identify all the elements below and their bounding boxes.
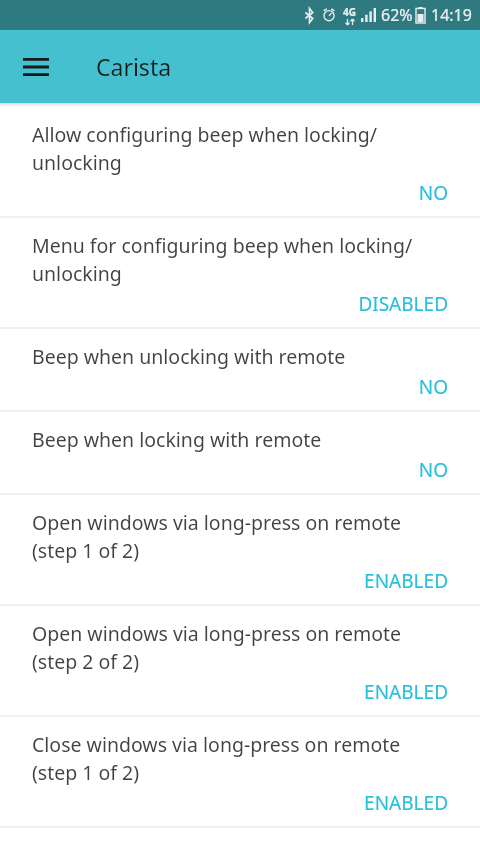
button[interactable]: Open navigation menu [12, 43, 60, 91]
staticText: ENABLED [32, 679, 448, 705]
staticText: Menu for configuring beep when locking/ … [32, 232, 413, 287]
button[interactable]: Beep when locking with remote [0, 412, 480, 493]
button[interactable]: Open windows via long-press on remote (s… [0, 495, 480, 604]
staticText: Beep when unlocking with remote [32, 343, 346, 370]
button[interactable]: Open windows via long-press on remote (s… [0, 606, 480, 715]
staticText: 4G [343, 5, 356, 19]
button[interactable]: Menu for configuring beep when locking/ … [0, 218, 480, 327]
staticText: Open windows via long-press on remote (s… [32, 509, 402, 564]
staticText: NO [32, 457, 448, 483]
staticText: DISABLED [32, 291, 448, 317]
staticText: NO [32, 180, 448, 206]
button[interactable]: Allow configuring beep when locking/ unl… [0, 107, 480, 216]
staticText: ENABLED [32, 568, 448, 594]
staticText: Open windows via long-press on remote (s… [32, 620, 402, 675]
staticText: ENABLED [32, 790, 448, 816]
staticText: NO [32, 374, 448, 400]
staticText: Allow configuring beep when locking/ unl… [32, 121, 377, 176]
staticText: Beep when locking with remote [32, 426, 322, 453]
staticText: 62% [381, 4, 413, 26]
button[interactable]: Close windows via long-press on remote (… [0, 717, 480, 826]
staticText: 14:19 [431, 4, 472, 26]
staticText: Close windows via long-press on remote (… [32, 731, 401, 786]
staticText: Carista [96, 51, 172, 82]
button[interactable]: Beep when unlocking with remote [0, 329, 480, 410]
